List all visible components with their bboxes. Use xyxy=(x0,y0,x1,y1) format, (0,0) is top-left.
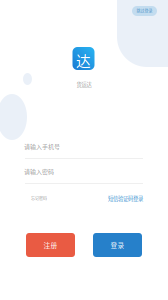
button[interactable]: 跳过登录 xyxy=(132,6,157,16)
staticText: 忘记密码 xyxy=(31,196,47,201)
staticText: 跳过登录 xyxy=(136,8,152,14)
staticText: 短信验证码登录 xyxy=(108,195,143,202)
button[interactable]: 注册 xyxy=(26,233,75,257)
button[interactable]: 短信验证码登录 xyxy=(108,195,143,202)
staticText: 登录 xyxy=(110,240,124,250)
staticText: 注册 xyxy=(43,240,57,250)
staticText: 达 xyxy=(76,50,91,71)
button[interactable]: 登录 xyxy=(93,233,142,257)
staticText: 请输入密码 xyxy=(24,167,54,176)
staticText: 货运达 xyxy=(76,81,91,88)
button[interactable]: 忘记密码 xyxy=(31,195,47,202)
staticText: 请输入手机号 xyxy=(24,142,60,151)
